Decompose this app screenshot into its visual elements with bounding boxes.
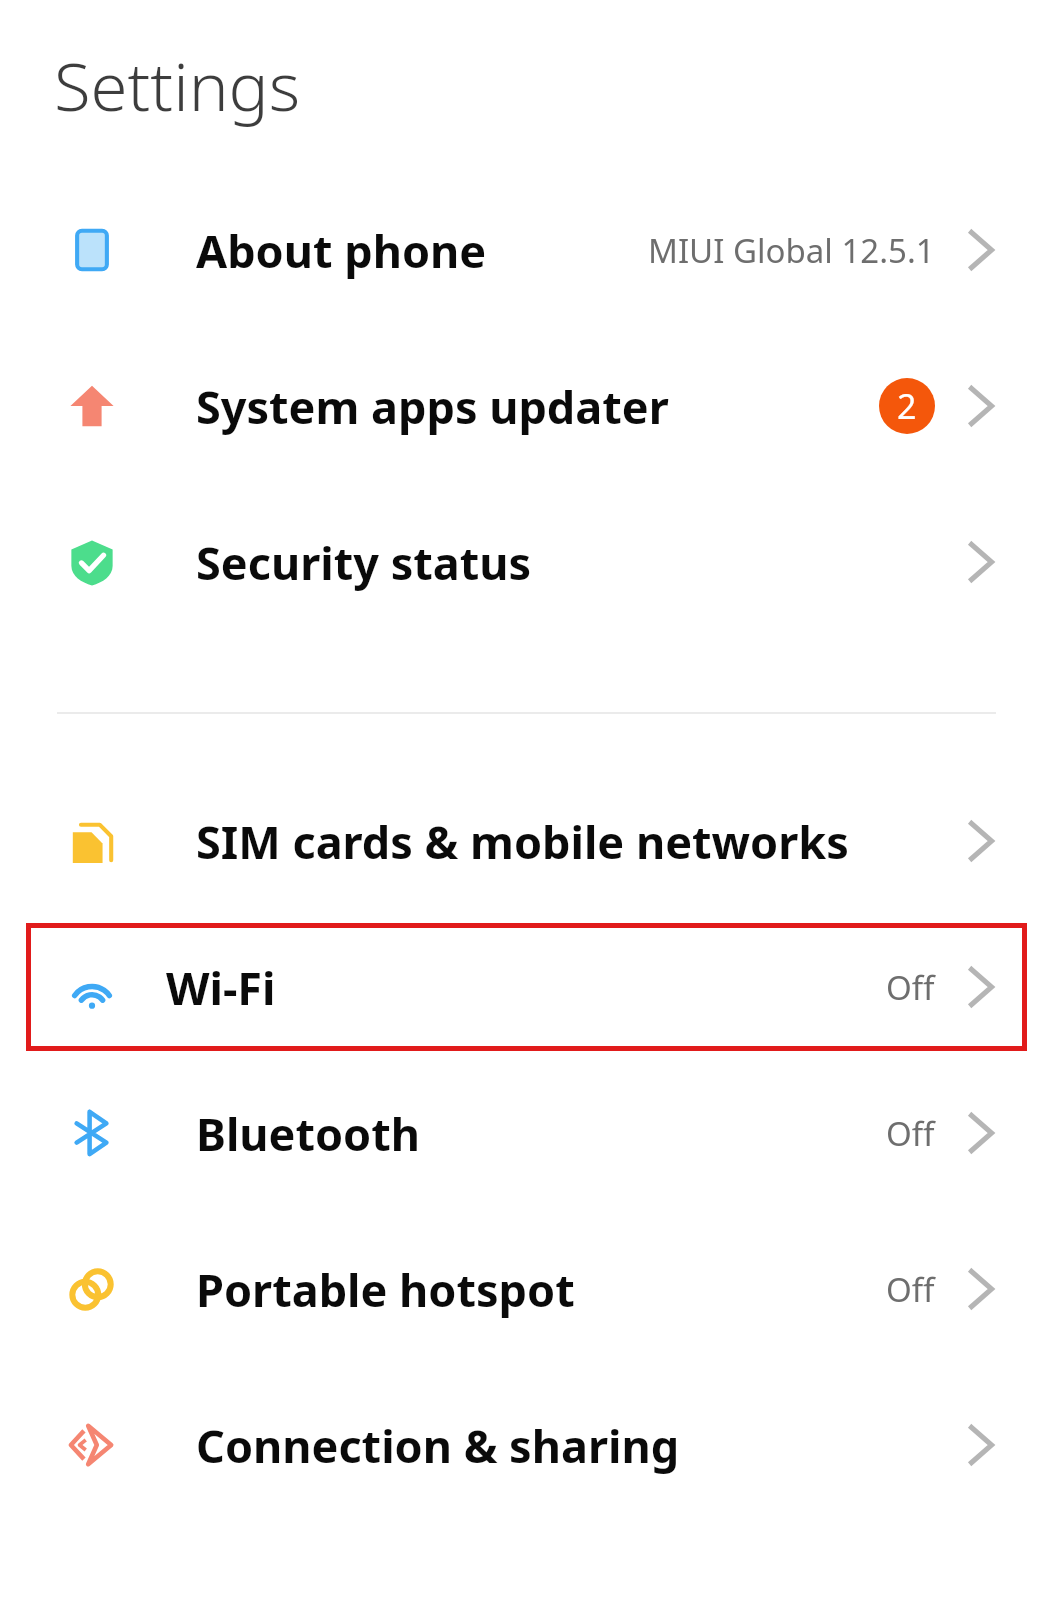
other: Open Portable hotspot	[967, 1267, 997, 1311]
other: Open SIM cards & mobile networks	[967, 819, 997, 863]
staticText: Off	[886, 1111, 935, 1156]
staticText: Connection & sharing	[196, 1415, 680, 1476]
button[interactable]: About phone	[0, 172, 1053, 328]
button[interactable]: SIM cards & mobile networks	[0, 763, 1053, 919]
staticText: About phone	[196, 220, 487, 281]
staticText: Bluetooth	[196, 1103, 421, 1164]
other: Open Security status	[967, 540, 997, 584]
other: Open Connection & sharing	[967, 1423, 997, 1467]
staticText: SIM cards & mobile networks	[196, 811, 849, 872]
staticText: Off	[886, 1267, 935, 1312]
button[interactable]: Wi-Fi	[26, 919, 1027, 1055]
button[interactable]: Bluetooth	[0, 1055, 1053, 1211]
button[interactable]: Security status	[0, 484, 1053, 640]
other: Open Wi-Fi	[967, 965, 997, 1009]
staticText: Wi-Fi	[166, 957, 276, 1018]
staticText: Security status	[196, 532, 532, 593]
staticText: Portable hotspot	[196, 1259, 575, 1320]
staticText: 2	[897, 383, 917, 429]
staticText: Off	[886, 965, 935, 1010]
button[interactable]: Connection & sharing	[0, 1367, 1053, 1523]
staticText: MIUI Global 12.5.1	[648, 228, 935, 273]
staticText: System apps updater	[196, 376, 669, 437]
other: Open Bluetooth	[967, 1111, 997, 1155]
button[interactable]: Portable hotspot	[0, 1211, 1053, 1367]
other: Open System apps updater	[967, 384, 997, 428]
other: Open About phone	[967, 228, 997, 272]
staticText: Settings	[54, 39, 301, 130]
button[interactable]: System apps updater	[0, 328, 1053, 484]
